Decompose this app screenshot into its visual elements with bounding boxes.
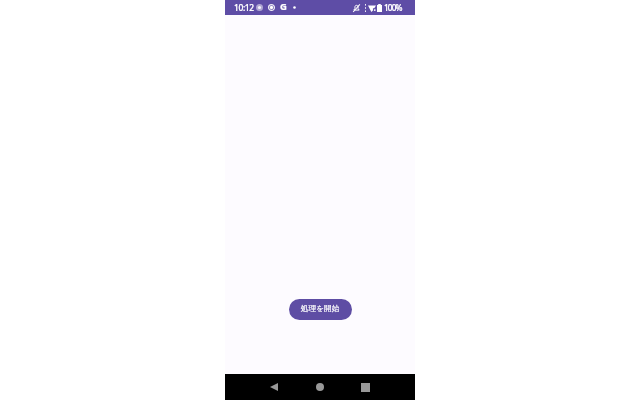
staticText: G <box>280 0 287 13</box>
button[interactable]: Home <box>307 374 333 400</box>
button[interactable]: Recent apps <box>352 374 378 400</box>
staticText: 処理を開始 <box>301 304 340 314</box>
staticText: 100% <box>384 2 402 13</box>
button[interactable]: Back <box>261 374 287 400</box>
staticText: 10:12 <box>234 2 254 13</box>
button[interactable]: 処理を開始 <box>289 299 352 320</box>
